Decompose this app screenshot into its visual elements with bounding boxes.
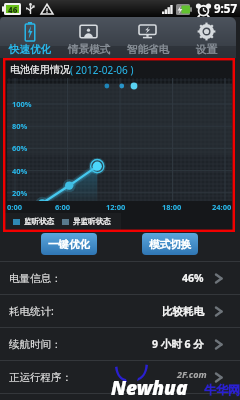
button[interactable]: 快速优化 bbox=[0, 17, 59, 58]
staticText: 12:00 bbox=[106, 202, 126, 212]
staticText: 20% bbox=[12, 188, 28, 198]
button[interactable]: 耗电统计: bbox=[0, 295, 240, 327]
staticText: Newhua bbox=[111, 375, 188, 400]
staticText: 快速优化 bbox=[9, 43, 51, 56]
staticText: ( 2012-02-06 ) bbox=[70, 63, 134, 77]
button[interactable]: 电量信息： bbox=[0, 262, 240, 294]
staticText: 耗电统计: bbox=[9, 304, 54, 318]
staticText: 异监听状态 bbox=[73, 217, 111, 226]
button[interactable]: 智能省电 bbox=[118, 17, 177, 58]
button[interactable]: 模式切换 bbox=[142, 233, 198, 255]
staticText: 模式切换 bbox=[149, 238, 191, 251]
other: Open bbox=[215, 372, 223, 383]
staticText: 比较耗电 bbox=[162, 305, 204, 318]
staticText: 设置 bbox=[196, 43, 217, 56]
staticText: 正运行程序： bbox=[9, 371, 72, 384]
staticText: 一键优化 bbox=[48, 238, 90, 251]
button[interactable]: 设置 bbox=[177, 17, 236, 58]
other: Open bbox=[215, 306, 223, 317]
staticText: 电池使用情况 bbox=[10, 63, 70, 76]
staticText: 40% bbox=[12, 166, 28, 176]
staticText: 智能省电 bbox=[127, 43, 169, 56]
staticText: 80% bbox=[12, 121, 28, 131]
staticText: 18:00 bbox=[162, 202, 182, 212]
staticText: 监听状态 bbox=[24, 217, 54, 226]
staticText: 情景模式 bbox=[68, 43, 110, 56]
staticText: 46% bbox=[182, 271, 204, 285]
staticText: 6:00 bbox=[55, 202, 70, 212]
other: Open bbox=[215, 339, 223, 350]
staticText: 100% bbox=[12, 99, 32, 109]
staticText: 牛华网 bbox=[204, 382, 240, 397]
button[interactable]: 续航时间： bbox=[0, 328, 240, 360]
staticText: 0:00 bbox=[7, 202, 22, 212]
staticText: 2F.com bbox=[177, 368, 207, 380]
button[interactable]: 情景模式 bbox=[59, 17, 118, 58]
staticText: 24:00 bbox=[212, 202, 232, 212]
other: Open bbox=[215, 273, 223, 284]
button[interactable]: 一键优化 bbox=[41, 233, 97, 255]
staticText: 60% bbox=[12, 143, 28, 153]
staticText: 9:57 bbox=[214, 1, 237, 17]
staticText: 续航时间： bbox=[9, 338, 62, 351]
staticText: 电量信息： bbox=[9, 272, 62, 285]
staticText: 46 bbox=[8, 4, 18, 15]
staticText: 9 小时 6 分 bbox=[152, 337, 204, 351]
button[interactable]: 正运行程序： bbox=[0, 361, 240, 393]
